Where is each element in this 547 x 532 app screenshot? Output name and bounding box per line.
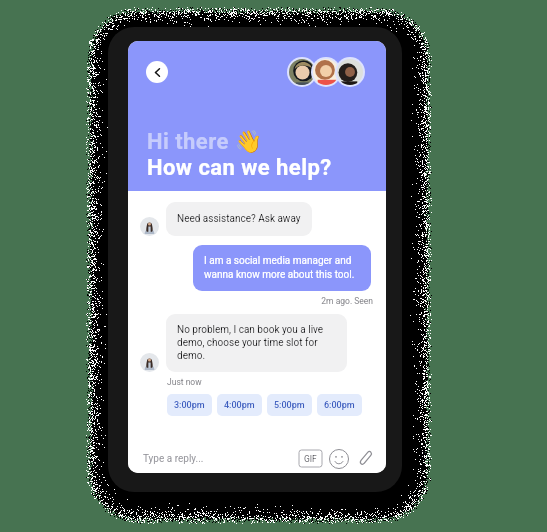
- button[interactable]: 6:00pm: [317, 394, 362, 416]
- button[interactable]: 3:00pm: [167, 394, 212, 416]
- button[interactable]: 5:00pm: [267, 394, 312, 416]
- staticText: Hi there 👋: [147, 129, 263, 155]
- button[interactable]: Attach file: [358, 449, 374, 468]
- staticText: Need assistance? Ask away: [177, 213, 301, 225]
- staticText: 4:00pm: [224, 400, 255, 411]
- staticText: 2m ago. Seen: [128, 296, 373, 306]
- staticText: I am a social media manager and wanna kn…: [204, 255, 360, 281]
- staticText: Just now: [167, 377, 202, 387]
- button[interactable]: Need assistance? Ask away: [166, 202, 312, 236]
- staticText: 3:00pm: [174, 400, 205, 411]
- button[interactable]: Emoji: [329, 449, 349, 469]
- staticText: Type a reply...: [143, 453, 204, 465]
- button[interactable]: 4:00pm: [217, 394, 262, 416]
- button[interactable]: I am a social media manager and wanna kn…: [193, 245, 371, 291]
- button[interactable]: Back: [146, 61, 168, 83]
- button[interactable]: No problem, I can book you a live demo, …: [166, 314, 347, 372]
- staticText: How can we help?: [147, 155, 332, 181]
- staticText: GIF: [304, 454, 317, 464]
- staticText: 5:00pm: [274, 400, 305, 411]
- button[interactable]: Send a GIF: [299, 450, 322, 467]
- staticText: 6:00pm: [324, 400, 355, 411]
- staticText: No problem, I can book you a live demo, …: [177, 324, 336, 362]
